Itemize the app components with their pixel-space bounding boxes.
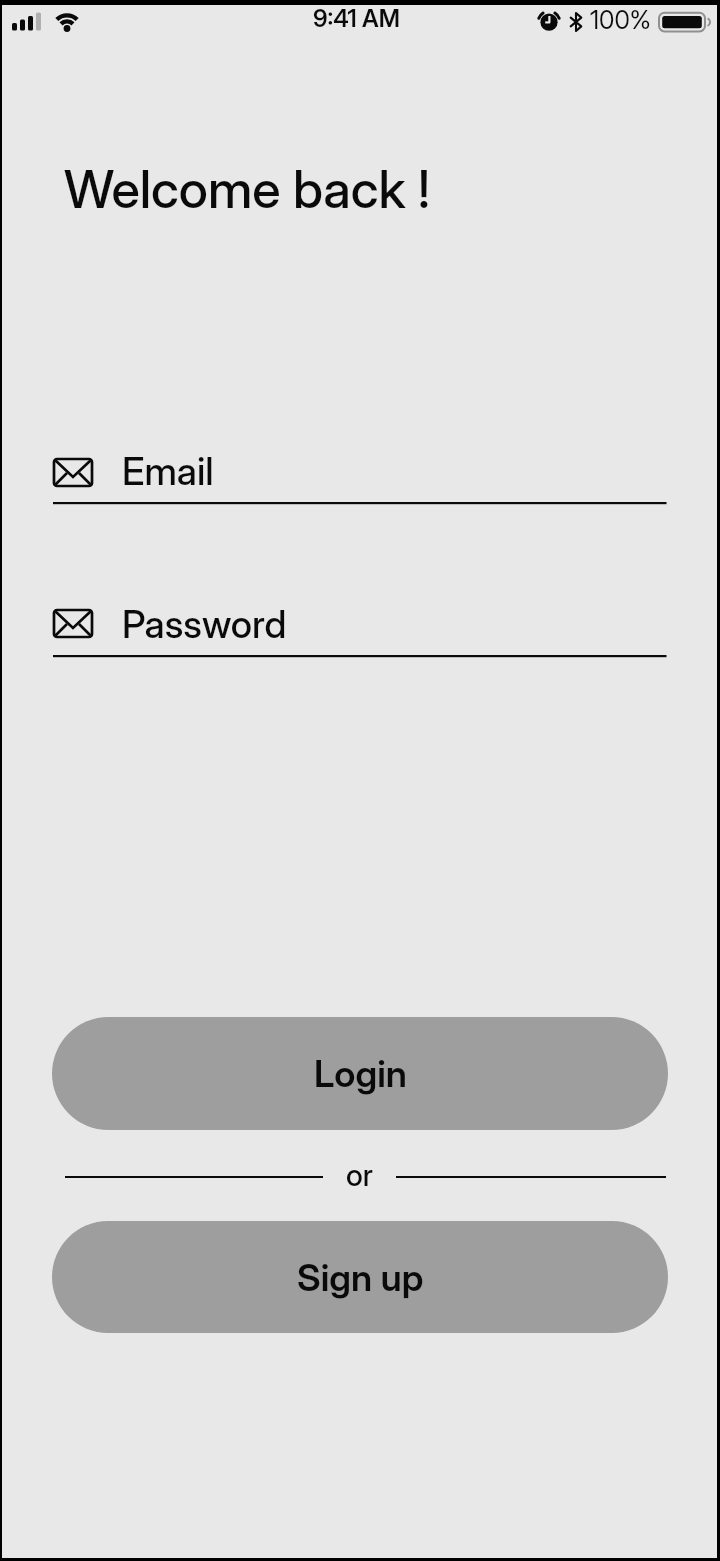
staticText: Password	[122, 601, 287, 647]
button[interactable]: Login	[52, 1017, 668, 1130]
button[interactable]: or	[330, 1150, 389, 1200]
button[interactable]: Sign up	[52, 1221, 668, 1333]
staticText: Sign up	[297, 1255, 424, 1300]
staticText: Login	[314, 1051, 407, 1096]
staticText: Email	[122, 448, 214, 494]
button[interactable]: Password	[53, 592, 667, 657]
staticText: or	[346, 1157, 373, 1193]
staticText: 100%	[590, 5, 651, 35]
staticText: Welcome back !	[64, 158, 431, 221]
button[interactable]: Email	[53, 440, 667, 504]
staticText: 9:41 AM	[313, 4, 400, 33]
